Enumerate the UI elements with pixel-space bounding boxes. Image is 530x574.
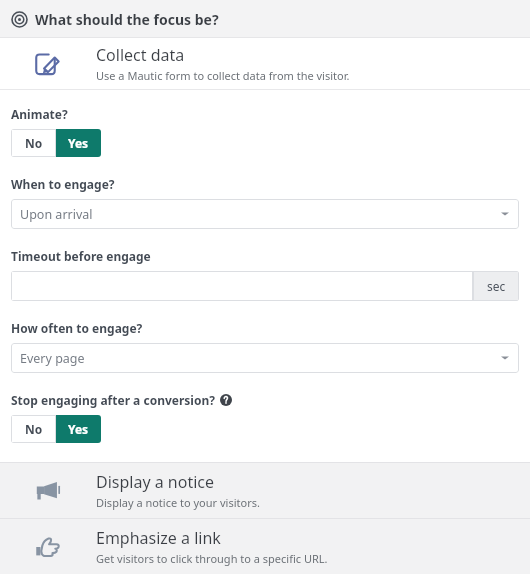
- other: Display a notice: [0, 477, 96, 505]
- button[interactable]: [11, 271, 473, 301]
- staticText: Upon arrival: [20, 206, 93, 223]
- staticText: No: [25, 135, 43, 151]
- button[interactable]: Emphasize a link: [0, 519, 530, 574]
- staticText: Emphasize a link: [96, 527, 221, 549]
- staticText: Yes: [68, 421, 89, 437]
- button[interactable]: sec: [473, 271, 519, 301]
- button[interactable]: No: [11, 129, 56, 157]
- staticText: Animate?: [11, 106, 68, 122]
- button[interactable]: Upon arrival: [11, 199, 519, 229]
- staticText: Get visitors to click through to a speci…: [96, 551, 328, 566]
- button[interactable]: Help: [220, 394, 232, 406]
- staticText: Collect data: [96, 44, 185, 66]
- other: Emphasize a link: [0, 533, 96, 561]
- staticText: Use a Mautic form to collect data from t…: [96, 68, 350, 83]
- button[interactable]: Yes: [56, 415, 101, 443]
- button[interactable]: Every page: [11, 343, 519, 373]
- staticText: Timeout before engage: [11, 248, 151, 264]
- staticText: Yes: [68, 135, 89, 151]
- button[interactable]: Yes: [56, 129, 101, 157]
- button[interactable]: No: [11, 415, 56, 443]
- button[interactable]: Collect data: [0, 38, 530, 90]
- staticText: sec: [487, 278, 506, 294]
- staticText: Display a notice to your visitors.: [96, 495, 260, 510]
- staticText: When to engage?: [11, 176, 115, 192]
- staticText: Stop engaging after a conversion?: [11, 392, 215, 408]
- staticText: Display a notice: [96, 471, 215, 493]
- staticText: No: [25, 421, 43, 437]
- button[interactable]: Display a notice: [0, 463, 530, 518]
- staticText: What should the focus be?: [35, 10, 219, 29]
- staticText: How often to engage?: [11, 320, 143, 336]
- staticText: Every page: [20, 350, 85, 367]
